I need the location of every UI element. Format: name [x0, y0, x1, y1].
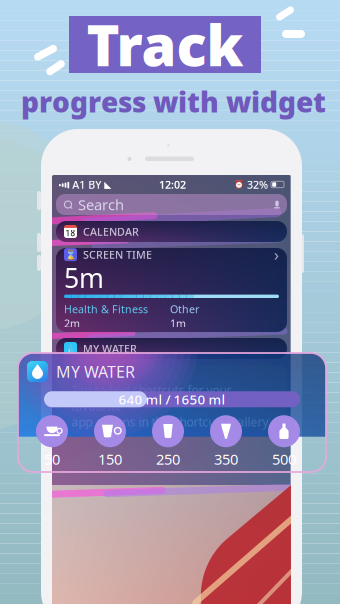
- staticText: 500: [272, 449, 296, 469]
- staticText: app actions in the Shortcuts Gallery.: [71, 414, 271, 430]
- staticText: 32%: [244, 177, 271, 192]
- staticText: 18: [65, 228, 75, 238]
- staticText: CALENDAR: [83, 224, 139, 239]
- staticText: 💧: [64, 343, 76, 354]
- staticText: 150: [98, 449, 122, 469]
- staticText: 1m: [170, 316, 186, 330]
- staticText: SCREEN TIME: [83, 248, 152, 262]
- staticText: A1 BY: [69, 177, 101, 192]
- staticText: Health & Fitness: [64, 302, 148, 316]
- staticText: 5m: [64, 260, 104, 295]
- staticText: 50: [44, 449, 60, 469]
- button[interactable]: 50: [29, 415, 75, 469]
- staticText: 250: [156, 449, 180, 469]
- staticText: ⌛: [64, 249, 76, 260]
- button[interactable]: 500: [261, 415, 307, 469]
- staticText: MY WATER: [83, 341, 137, 356]
- staticText: 12:02: [159, 177, 186, 192]
- staticText: 350: [214, 449, 238, 469]
- staticText: MY WATER: [56, 361, 135, 382]
- staticText: ›: [274, 244, 279, 265]
- staticText: Search: [78, 195, 124, 214]
- staticText: Other: [170, 302, 199, 316]
- staticText: Track: [86, 7, 243, 82]
- staticText: 640 ml / 1650 ml: [118, 390, 225, 408]
- button[interactable]: 350: [203, 415, 249, 469]
- button[interactable]: 150: [87, 415, 133, 469]
- staticText: ◣: [101, 179, 111, 190]
- staticText: progress with widget: [21, 83, 326, 120]
- staticText: ⏰: [234, 180, 244, 189]
- staticText: 2m: [64, 316, 80, 330]
- staticText: Tap to find shortcuts for your favourite: [71, 382, 231, 414]
- button[interactable]: 250: [145, 415, 191, 469]
